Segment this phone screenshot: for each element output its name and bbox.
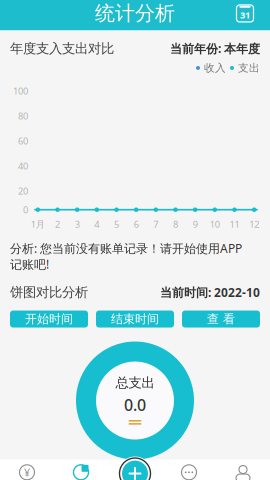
staticText: 100	[13, 85, 28, 97]
staticText: 总支出	[115, 375, 154, 391]
staticText: 2	[55, 218, 60, 230]
staticText: 9	[193, 218, 198, 230]
button[interactable]: Calendar	[228, 0, 262, 30]
button[interactable]: 查 看	[182, 310, 260, 327]
button[interactable]: Add record	[113, 451, 157, 480]
button[interactable]: ¥	[0, 459, 54, 480]
staticText: 80	[18, 110, 28, 122]
staticText: 7	[153, 218, 158, 230]
button[interactable]: 结束时间	[96, 310, 174, 327]
button[interactable]: 图表	[54, 459, 108, 480]
staticText: 11	[229, 218, 239, 230]
staticText: 统计分析	[95, 1, 175, 26]
staticText: 饼图对比分析	[10, 284, 88, 301]
staticText: 结束时间	[111, 312, 159, 326]
staticText: 31	[240, 9, 250, 21]
staticText: 分析: 您当前没有账单记录！请开始使用APP记账吧!	[10, 240, 242, 272]
button[interactable]: 我的	[216, 459, 270, 480]
staticText: 收入	[204, 61, 226, 74]
staticText: 当前年份: 本年度	[170, 40, 260, 56]
button[interactable]: 开始时间	[10, 310, 88, 327]
button[interactable]: 分享	[162, 459, 216, 480]
staticText: 8	[173, 218, 178, 230]
staticText: 当前时间: 2022-10	[160, 284, 260, 300]
staticText: 年度支入支出对比	[10, 40, 114, 57]
staticText: 60	[18, 135, 28, 147]
staticText: 6	[134, 218, 139, 230]
staticText: 10	[210, 218, 220, 230]
staticText: 12	[249, 218, 259, 230]
staticText: 40	[18, 160, 28, 172]
staticText: 支出	[238, 61, 260, 74]
staticText: 20	[18, 185, 28, 197]
staticText: 0.0	[124, 394, 146, 415]
staticText: 开始时间	[25, 312, 73, 326]
staticText: ¥	[24, 465, 30, 479]
staticText: 0	[23, 203, 28, 216]
staticText: 1月	[31, 218, 45, 230]
staticText: 5	[114, 218, 119, 230]
staticText: 4	[94, 218, 99, 230]
staticText: 查 看	[207, 312, 235, 326]
staticText: 3	[75, 218, 80, 230]
